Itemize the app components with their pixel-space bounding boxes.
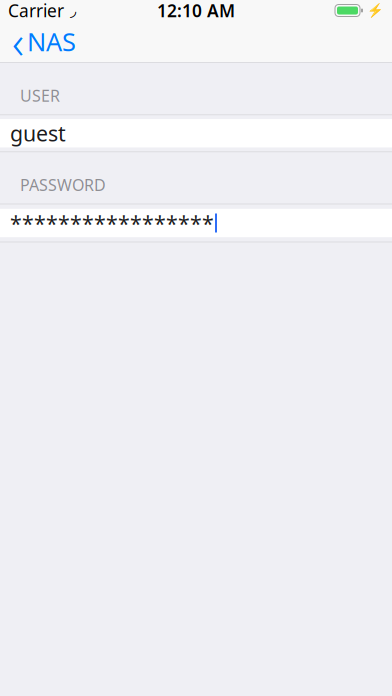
- staticText: Carrier: [8, 0, 64, 22]
- staticText: ‹: [12, 11, 24, 72]
- staticText: PASSWORD: [20, 174, 106, 195]
- staticText: guest: [10, 119, 66, 147]
- staticText: USER: [20, 85, 60, 106]
- staticText: ◞: [70, 1, 76, 20]
- staticText: *****************: [10, 209, 214, 237]
- staticText: 12:10 AM: [157, 0, 235, 22]
- staticText: ⚡: [367, 3, 384, 18]
- staticText: NAS: [27, 25, 76, 58]
- button[interactable]: ‹: [0, 21, 88, 62]
